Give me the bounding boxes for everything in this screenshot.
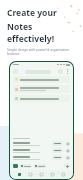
button[interactable]: Record action [65,141,70,146]
button[interactable]: More options [65,69,70,74]
button[interactable]: Photo [52,148,63,153]
button[interactable]: Settings [27,171,34,178]
button[interactable]: Photo action [65,148,70,153]
button[interactable] [34,164,46,168]
staticText: Notes effectively! [7,21,77,45]
button[interactable]: Profile [60,171,67,178]
button[interactable]: Share action [65,155,70,160]
button[interactable]: Notes [16,171,23,178]
button[interactable]: Grid view [58,69,63,74]
button[interactable]: Share [52,155,63,160]
staticText: Create your [7,7,57,19]
button[interactable]: Record [52,141,63,146]
button[interactable] [20,164,32,168]
button[interactable] [13,76,70,83]
button[interactable]: Reminders [38,171,45,178]
button[interactable]: Add note [64,163,70,169]
staticText: Simple design with powerful organization… [7,48,77,56]
button[interactable] [13,95,70,102]
button[interactable]: Search [49,171,56,178]
button[interactable]: All [13,164,18,168]
button[interactable] [13,85,70,93]
